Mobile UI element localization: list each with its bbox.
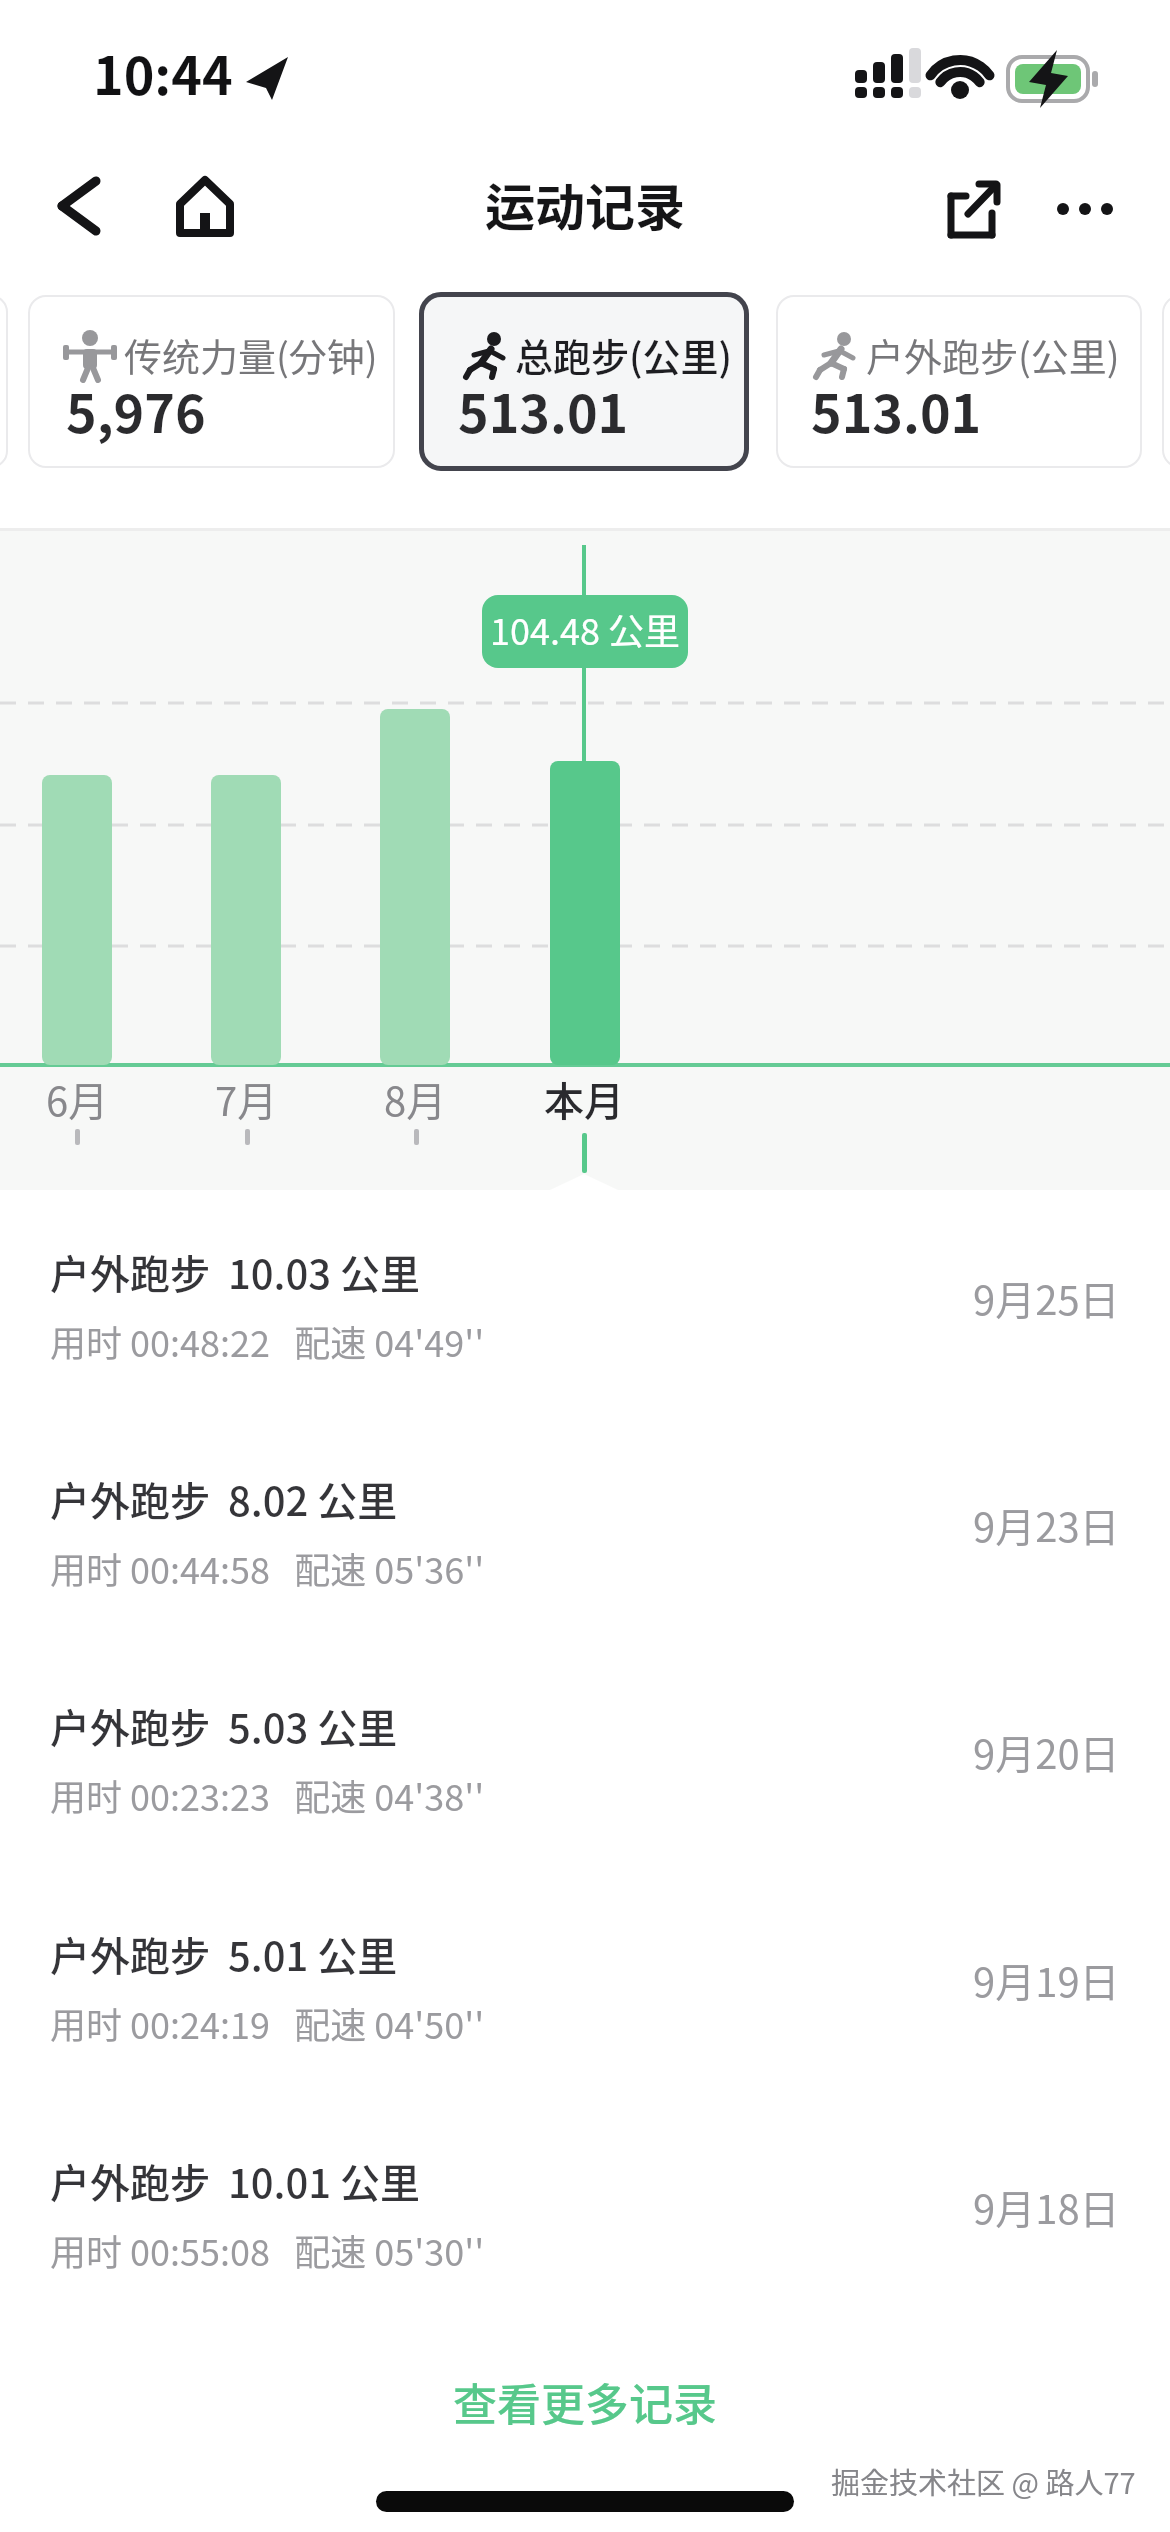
staticText: 户外跑步 10.03 公里 (50, 1243, 421, 1301)
staticText: 104.48 公里 (490, 603, 680, 655)
staticText: 9月20日 (973, 1723, 1120, 1781)
staticText: 7月 (215, 1070, 278, 1128)
staticText: 总跑步(公里) (515, 327, 733, 382)
staticText: 9月18日 (973, 2178, 1120, 2236)
staticText: 查看更多记录 (453, 2370, 717, 2434)
staticText: 本月 (544, 1070, 624, 1128)
staticText: 9月25日 (973, 1269, 1120, 1327)
staticText: 8月 (384, 1070, 447, 1128)
staticText: 用时 00:23:23 配速 04'38'' (50, 1769, 485, 1821)
staticText: 运动记录 (485, 168, 685, 240)
staticText: 9月23日 (973, 1496, 1120, 1554)
staticText: 掘金技术社区 @ 路人77 (831, 2460, 1136, 2502)
staticText: 用时 00:24:19 配速 04'50'' (50, 1997, 485, 2049)
staticText: 户外跑步 8.02 公里 (50, 1470, 398, 1528)
staticText: 用时 00:55:08 配速 05'30'' (50, 2224, 485, 2276)
staticText: 用时 00:44:58 配速 05'36'' (50, 1542, 485, 1594)
staticText: 5,976 (66, 373, 206, 448)
staticText: 用时 00:48:22 配速 04'49'' (50, 1315, 485, 1367)
staticText: 户外跑步(公里) (866, 327, 1120, 382)
staticText: 513.01 (458, 373, 629, 448)
staticText: 户外跑步 5.03 公里 (50, 1697, 398, 1755)
staticText: 6月 (46, 1070, 109, 1128)
staticText: 户外跑步 5.01 公里 (50, 1925, 398, 1983)
staticText: 513.01 (811, 373, 982, 448)
staticText: 户外跑步 10.01 公里 (50, 2152, 421, 2210)
staticText: 传统力量(分钟) (124, 327, 378, 382)
staticText: 9月19日 (973, 1951, 1120, 2009)
staticText: 10:44 (93, 35, 233, 110)
